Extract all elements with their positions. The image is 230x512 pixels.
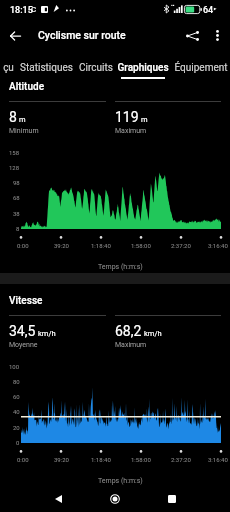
button[interactable]: Back [45, 486, 71, 512]
staticText: 38 [13, 210, 20, 217]
staticText: 8 [9, 109, 17, 125]
staticText: 34,5 [9, 323, 36, 339]
button[interactable]: Home [102, 486, 128, 512]
staticText: km/h [144, 329, 162, 338]
staticText: 98 [13, 179, 20, 186]
staticText: 40 [13, 408, 20, 415]
staticText: 0 [16, 439, 20, 446]
button[interactable]: Circuits [76, 52, 116, 80]
staticText: 39:20 [54, 242, 69, 249]
staticText: 1:18:40 [91, 456, 111, 463]
staticText: km/h [38, 329, 56, 338]
button[interactable]: Équipement [174, 52, 228, 80]
staticText: m [19, 115, 26, 124]
staticText: 68,2 [115, 323, 142, 339]
staticText: 158 [9, 149, 20, 156]
staticText: 1:58:00 [131, 242, 151, 249]
staticText: 20 [13, 424, 20, 431]
staticText: 128 [9, 164, 20, 171]
staticText: 68 [13, 194, 20, 201]
staticText: 60 [13, 393, 20, 400]
staticText: çu [3, 62, 14, 74]
staticText: 3:16:40 [208, 242, 228, 249]
staticText: 3:16:40 [208, 456, 228, 463]
staticText: 39:20 [54, 456, 69, 463]
staticText: Maximum [115, 341, 147, 349]
staticText: 100 [9, 363, 20, 370]
button[interactable]: Back [1, 22, 29, 50]
staticText: 1:18:40 [91, 242, 111, 249]
button[interactable]: More options [204, 22, 230, 48]
staticText: 2:37:20 [171, 456, 191, 463]
staticText: Graphiques [117, 62, 169, 74]
staticText: Temps (h:m:s) [98, 263, 143, 271]
staticText: Équipement [174, 62, 228, 74]
staticText: 0:00 [17, 242, 29, 249]
staticText: 119 [115, 109, 139, 125]
staticText: Maximum [115, 127, 147, 135]
staticText: 64 [203, 5, 214, 16]
staticText: Statistiques [20, 62, 73, 74]
staticText: Moyenne [9, 341, 38, 349]
staticText: m [141, 115, 148, 124]
staticText: 80 [13, 378, 20, 385]
button[interactable]: Share [179, 22, 206, 49]
button[interactable]: Recent apps [159, 486, 185, 512]
staticText: Temps (h:m:s) [98, 477, 143, 485]
staticText: Cyclisme sur route [38, 29, 126, 41]
staticText: Minimum [9, 127, 39, 135]
staticText: Vitesse [9, 295, 43, 307]
staticText: 1:58:00 [131, 456, 151, 463]
staticText: C [31, 5, 37, 14]
staticText: Altitude [9, 81, 45, 93]
staticText: 18:15 [10, 5, 33, 16]
staticText: 2:37:20 [171, 242, 191, 249]
button[interactable]: Statistiques [16, 52, 76, 80]
staticText: Circuits [79, 62, 113, 74]
staticText: 0:00 [17, 456, 29, 463]
button[interactable]: çu [0, 52, 28, 80]
button[interactable]: Graphiques [116, 52, 169, 80]
staticText: 8 [16, 225, 20, 232]
